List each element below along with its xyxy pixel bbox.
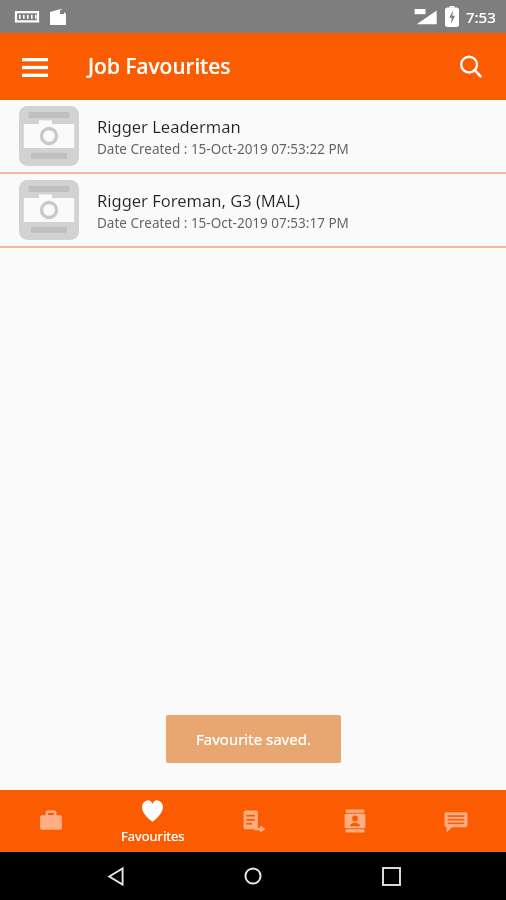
button[interactable]: Recent apps: [369, 854, 413, 898]
button[interactable]: Back: [94, 854, 138, 898]
staticText: Date Created : 15-Oct-2019 07:53:22 PM: [97, 140, 349, 158]
button[interactable]: Search: [448, 44, 494, 90]
button[interactable]: Messages: [405, 790, 506, 852]
button[interactable]: Jobs: [0, 790, 102, 852]
button[interactable]: Rigger Leaderman: [0, 100, 506, 172]
staticText: Date Created : 15-Oct-2019 07:53:17 PM: [97, 214, 349, 232]
staticText: Rigger Foreman, G3 (MAL): [97, 189, 300, 211]
button[interactable]: Profile: [304, 790, 405, 852]
staticText: Rigger Leaderman: [97, 115, 241, 137]
button[interactable]: Menu: [12, 44, 58, 90]
button[interactable]: Applications: [203, 790, 304, 852]
staticText: Favourite saved.: [196, 729, 311, 749]
staticText: Favourites: [121, 827, 185, 845]
staticText: 7:53: [466, 7, 496, 27]
button[interactable]: Rigger Foreman, G3 (MAL): [0, 174, 506, 246]
staticText: Job Favourites: [88, 52, 231, 81]
button[interactable]: Favourites: [102, 790, 203, 852]
button[interactable]: Home: [231, 854, 275, 898]
